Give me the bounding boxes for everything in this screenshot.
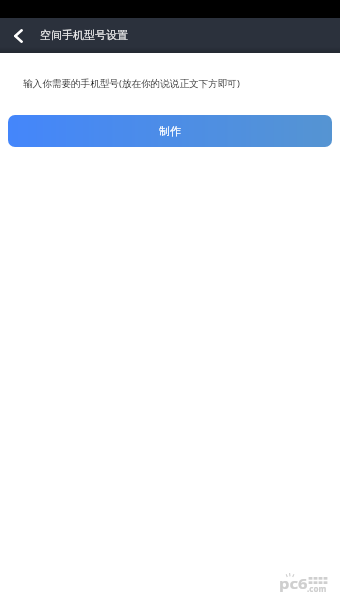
staticText: 制作 — [159, 124, 181, 138]
button[interactable]: 制作 — [8, 115, 332, 147]
staticText: .com — [307, 583, 327, 594]
button[interactable]: Back — [0, 18, 36, 53]
staticText: 输入你需要的手机型号(放在你的说说正文下方即可) — [23, 77, 240, 90]
staticText: pc6 — [279, 574, 308, 593]
staticText: 空间手机型号设置 — [40, 28, 128, 42]
